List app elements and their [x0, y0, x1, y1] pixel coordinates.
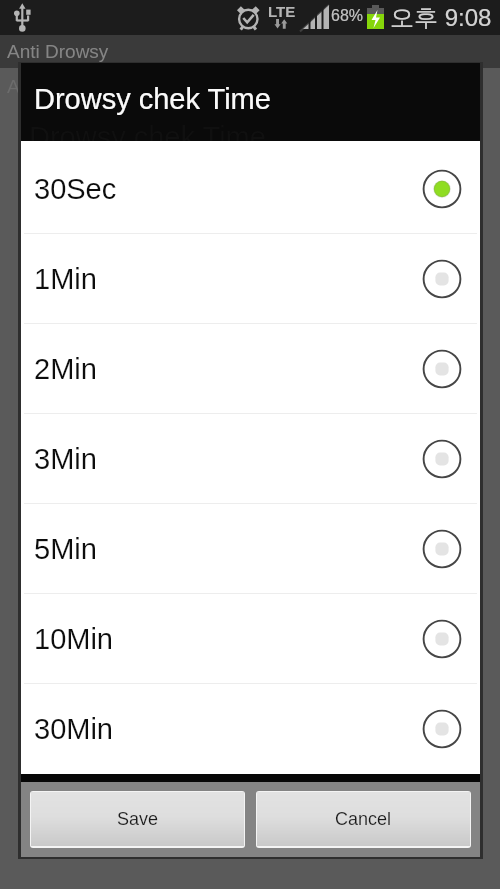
other: 3Min	[422, 439, 462, 479]
staticText: 2Min	[34, 353, 97, 385]
staticText: 5Min	[34, 533, 97, 565]
button[interactable]: 2Min	[21, 324, 480, 413]
other: Alarm set	[235, 2, 262, 33]
other: 5Min	[422, 529, 462, 569]
staticText: 오후 9:08	[390, 3, 492, 33]
button[interactable]: Save	[31, 792, 244, 846]
staticText: 30Min	[34, 713, 113, 745]
staticText: 10Min	[34, 623, 113, 655]
staticText: Drowsy chek Time	[29, 121, 266, 153]
other: 10Min	[422, 619, 462, 659]
other: 30Min	[422, 709, 462, 749]
other: Signal strength	[303, 5, 329, 29]
staticText: Cancel	[335, 809, 392, 829]
button[interactable]: 10Min	[21, 594, 480, 683]
other: 2Min	[422, 349, 462, 389]
other: 1Min	[422, 259, 462, 299]
staticText: 1Min	[34, 263, 97, 295]
other: 30Sec	[422, 169, 462, 209]
button[interactable]: 30Sec	[21, 144, 480, 233]
staticText: Anti Drowsy	[7, 76, 109, 97]
staticText: Anti Drowsy	[7, 41, 109, 62]
staticText: 68%	[331, 7, 364, 25]
button[interactable]: 5Min	[21, 504, 480, 593]
staticText: 3Min	[34, 443, 97, 475]
staticText: Drowsy chek Time	[34, 83, 271, 115]
button[interactable]: 3Min	[21, 414, 480, 503]
button[interactable]: 1Min	[21, 234, 480, 323]
staticText: 30Sec	[34, 173, 117, 205]
staticText: LTE	[268, 3, 296, 20]
staticText: Save	[117, 809, 159, 829]
button[interactable]: Cancel	[257, 792, 470, 846]
button[interactable]: 30Min	[21, 684, 480, 773]
other: USB connected	[12, 2, 34, 33]
